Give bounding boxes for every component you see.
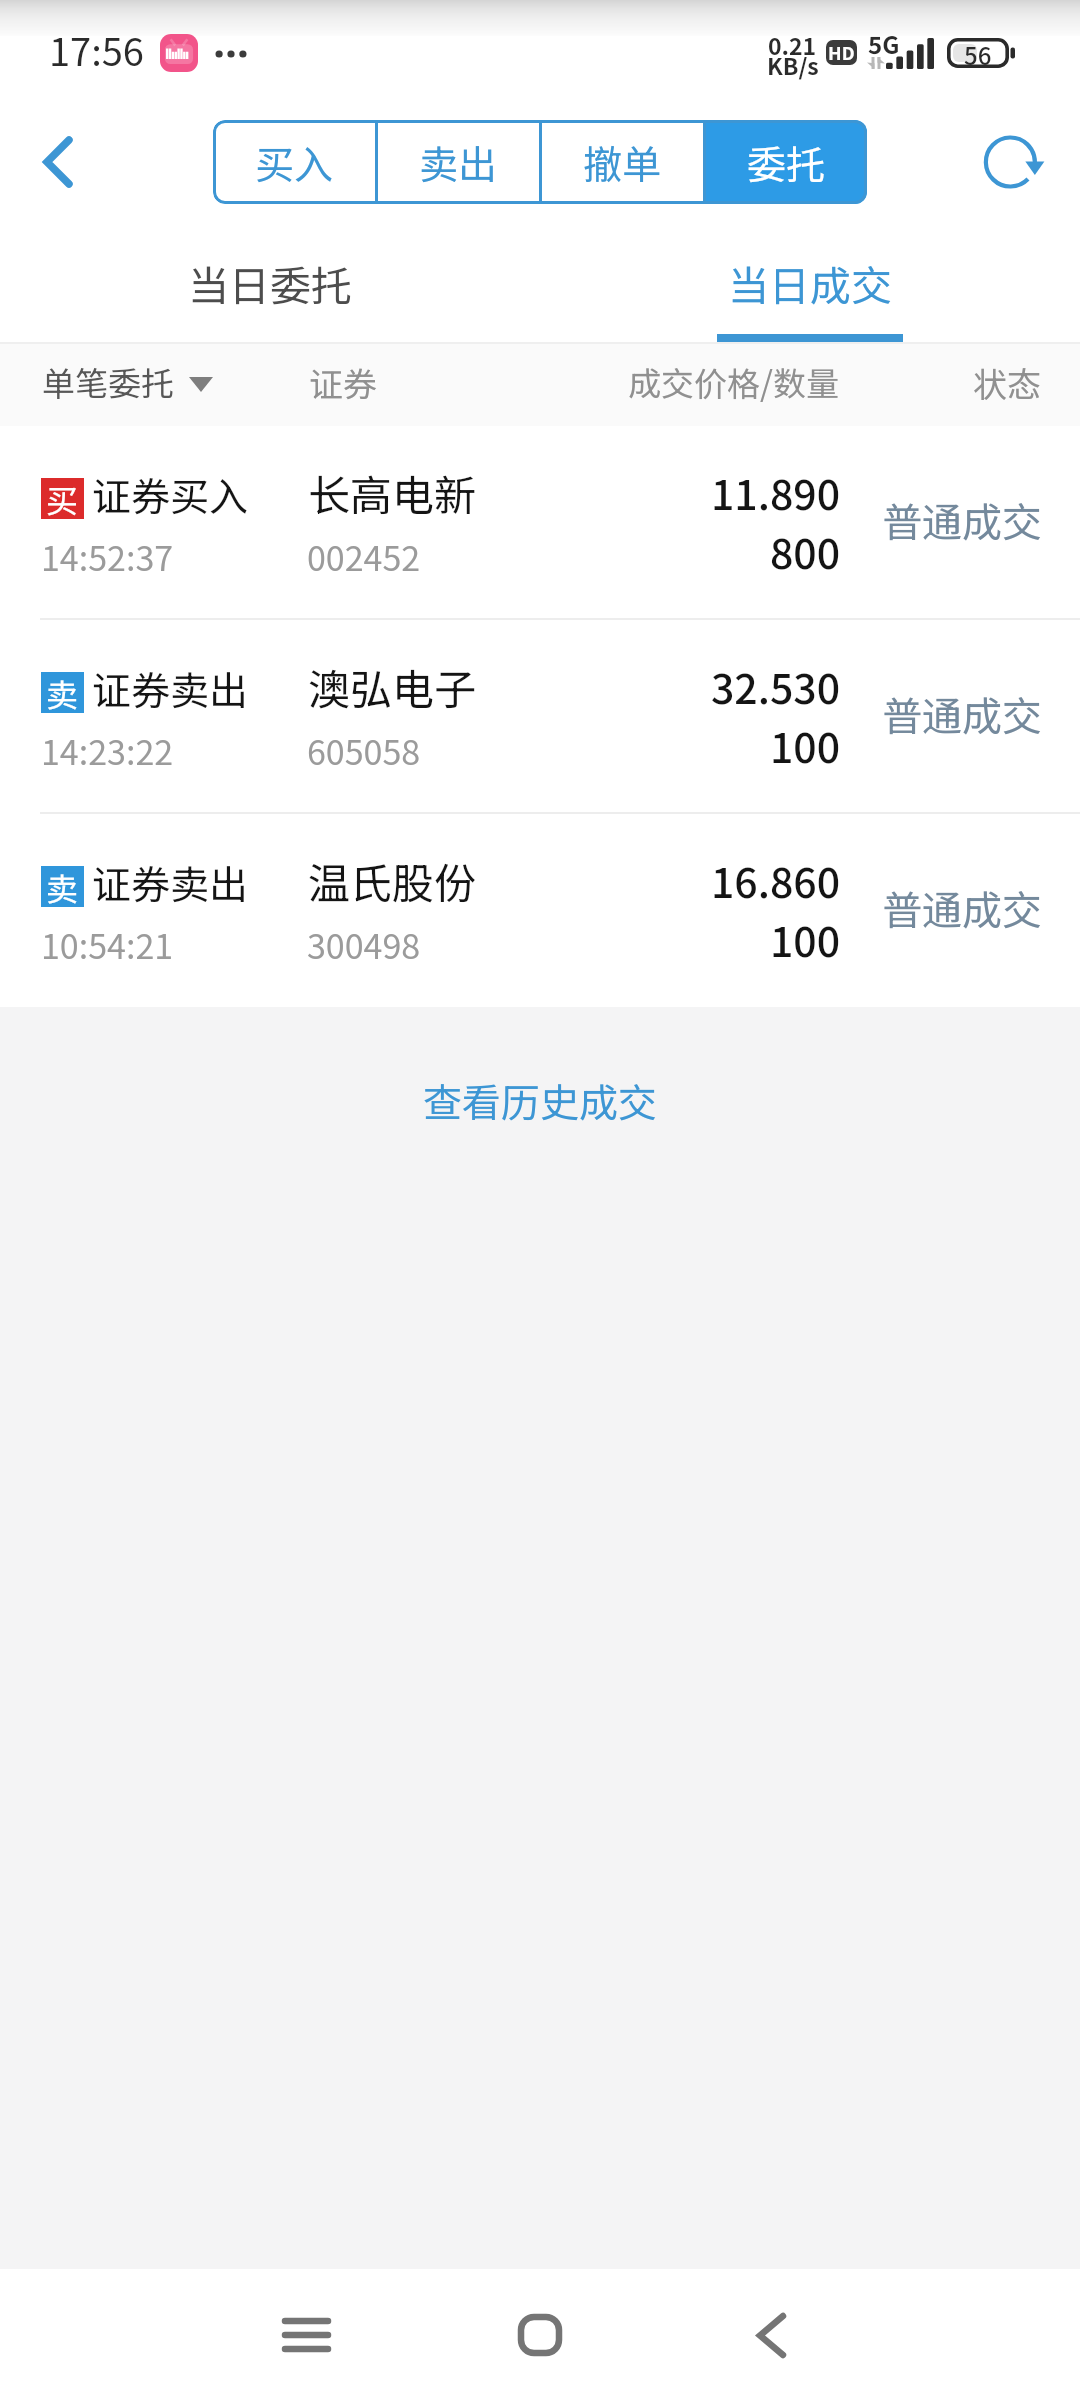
staticText: 002452: [307, 532, 421, 581]
staticText: 买: [46, 476, 79, 517]
staticText: 证券卖出: [92, 854, 249, 910]
staticText: 撤单: [583, 134, 662, 190]
staticText: 委托: [747, 134, 826, 190]
staticText: 单笔委托: [42, 358, 174, 406]
staticText: 卖: [46, 864, 79, 905]
staticText: 普通成交: [882, 879, 1042, 937]
staticText: KB/s: [767, 48, 819, 81]
button[interactable]: 买: [0, 426, 1080, 618]
staticText: 成交价格/数量: [628, 358, 839, 406]
staticText: 状态: [973, 358, 1041, 407]
staticText: 14:52:37: [41, 532, 174, 581]
staticText: 5G: [868, 26, 900, 61]
staticText: 温氏股份: [308, 850, 477, 911]
button[interactable]: Home: [480, 2275, 600, 2395]
button[interactable]: 撤单: [542, 120, 703, 204]
staticText: 买入: [255, 134, 334, 190]
button[interactable]: Recent apps: [246, 2275, 366, 2395]
staticText: 证券买入: [92, 466, 249, 522]
button[interactable]: 卖: [0, 620, 1080, 812]
button[interactable]: 卖出: [378, 120, 539, 204]
staticText: 查看历史成交: [423, 1072, 658, 1128]
button[interactable]: 当日委托: [0, 220, 540, 342]
button[interactable]: 买入: [213, 120, 375, 204]
staticText: 证券: [309, 358, 377, 407]
staticText: 10:54:21: [41, 920, 174, 969]
staticText: 100: [770, 909, 841, 968]
staticText: 14:23:22: [41, 726, 174, 775]
staticText: 当日成交: [728, 253, 892, 312]
button[interactable]: 卖: [0, 814, 1080, 1006]
staticText: 澳弘电子: [308, 656, 477, 717]
staticText: 0.21: [768, 28, 817, 61]
staticText: 16.860: [711, 850, 841, 909]
staticText: 长高电新: [308, 462, 477, 523]
staticText: 300498: [307, 920, 421, 969]
staticText: 32.530: [711, 656, 841, 715]
button[interactable]: Back: [711, 2275, 831, 2395]
staticText: 普通成交: [882, 491, 1042, 549]
staticText: 605058: [307, 726, 421, 775]
staticText: HD: [828, 40, 855, 64]
button[interactable]: 委托: [706, 120, 867, 204]
button[interactable]: 当日成交: [540, 220, 1080, 342]
button[interactable]: Back: [14, 118, 102, 206]
staticText: 证券卖出: [92, 660, 249, 716]
staticText: 17:56: [49, 22, 144, 77]
staticText: 800: [770, 521, 841, 580]
staticText: 当日委托: [188, 253, 352, 312]
button[interactable]: 单笔委托: [0, 350, 229, 418]
button[interactable]: 查看历史成交: [393, 1060, 688, 1140]
staticText: 11.890: [711, 462, 841, 521]
staticText: 卖: [46, 670, 79, 711]
button[interactable]: Refresh: [969, 118, 1057, 206]
staticText: 56: [964, 37, 992, 72]
staticText: 卖出: [419, 134, 498, 190]
staticText: 100: [770, 715, 841, 774]
staticText: 普通成交: [882, 685, 1042, 743]
